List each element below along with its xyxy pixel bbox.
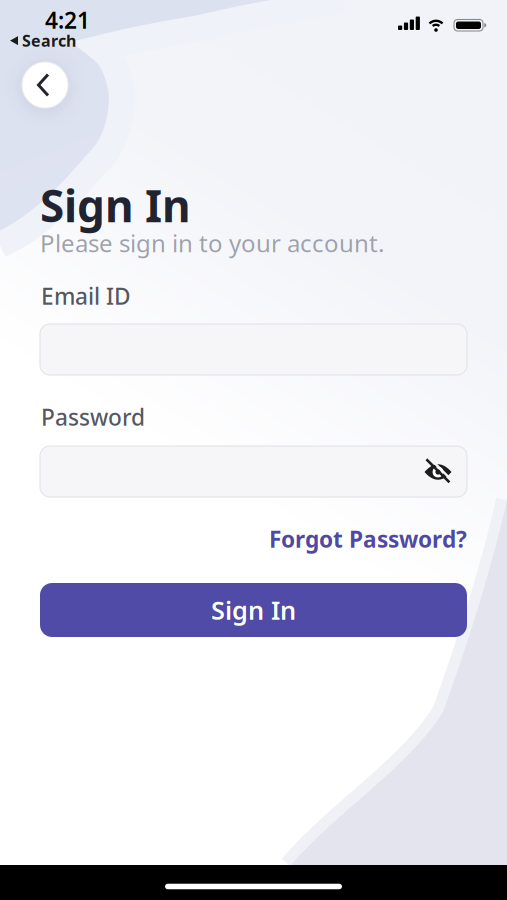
button[interactable]: Back to Search <box>10 30 76 51</box>
staticText: Sign In <box>40 176 191 234</box>
staticText: Sign In <box>211 593 296 627</box>
textField[interactable] <box>56 446 467 476</box>
staticText: Search <box>22 30 76 51</box>
staticText: Forgot Password? <box>269 524 467 554</box>
button[interactable]: Forgot Password? <box>269 524 467 554</box>
staticText: Please sign in to your account. <box>40 227 384 259</box>
staticText: Email ID <box>41 281 131 311</box>
staticText: 4:21 <box>45 5 90 35</box>
button[interactable]: Back <box>22 62 68 108</box>
staticText: Password <box>41 402 145 432</box>
button[interactable]: Show password <box>423 456 453 486</box>
button[interactable]: Sign In <box>40 583 467 637</box>
